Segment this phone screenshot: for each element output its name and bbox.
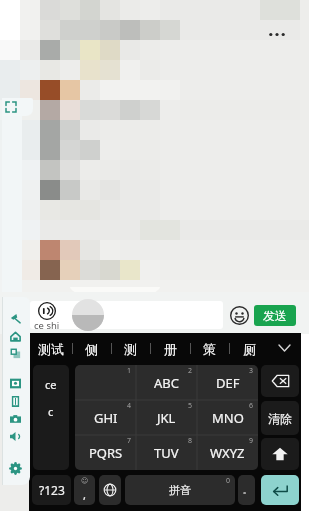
staticText: DEF [216,374,240,392]
staticText: 发送 [263,308,287,323]
staticText: 2 [188,366,193,376]
staticText: c [48,404,54,419]
button[interactable]: ce [33,365,69,470]
button[interactable]: Fullscreen [2,98,33,116]
button[interactable]: Card [6,392,25,410]
staticText: 册 [164,341,177,357]
button[interactable]: 测 [111,336,149,361]
button[interactable]: Camera [6,410,25,428]
button[interactable]: 拼音 [125,475,235,505]
staticText: 1 [127,366,132,376]
button[interactable]: ?123 [32,475,71,505]
button[interactable]: 策 [190,336,228,361]
staticText: 测试 [38,341,64,357]
button[interactable]: 清除 [261,401,299,435]
button[interactable] [30,301,223,329]
button[interactable]: Pin [6,309,25,327]
button[interactable]: JKL [136,400,197,435]
staticText: 7 [127,436,132,446]
staticText: 。 [243,485,251,495]
button[interactable]: 厕 [230,336,268,361]
staticText: WXYZ [210,444,245,462]
staticText: JKL [157,409,176,427]
button[interactable]: Photos [6,374,25,392]
staticText: 5 [188,401,193,411]
staticText: 测 [124,341,137,357]
staticText: ABC [154,374,179,392]
staticText: ce [45,377,57,392]
staticText: 厕 [243,341,256,357]
button[interactable]: 册 [151,336,189,361]
staticText: 策 [203,341,216,357]
button[interactable]: MNO [197,400,258,435]
button[interactable]: More options [264,27,290,41]
staticText: GHI [94,409,118,427]
staticText: ☺ [81,477,89,485]
button[interactable]: GHI [75,400,136,435]
button[interactable]: Duplicate [6,344,25,362]
staticText: TUV [154,444,179,462]
button[interactable]: Settings [6,459,25,477]
staticText: 侧 [85,341,98,357]
button[interactable]: 。 [238,475,255,505]
staticText: 4 [127,401,132,411]
button[interactable]: Language [99,475,121,505]
staticText: 6 [249,401,254,411]
button[interactable]: Backspace [261,365,299,397]
staticText: 8 [188,436,193,446]
button[interactable]: Hide keyboard [273,336,295,360]
button[interactable] [33,302,61,330]
staticText: 拼音 [169,483,191,497]
button[interactable]: ABC [136,365,197,400]
button[interactable]: PQRS [75,435,136,470]
button[interactable]: Enter [261,475,299,505]
staticText: 9 [249,436,254,446]
button[interactable]: 1 [75,365,136,400]
staticText: PQRS [89,444,123,462]
button[interactable]: Volume [6,427,25,445]
button[interactable]: ☺ [74,475,95,505]
button[interactable]: Home [6,327,25,345]
staticText: ?123 [39,482,65,498]
staticText: 0 [226,476,231,486]
staticText: , [83,487,86,502]
staticText: 清除 [268,411,292,426]
button[interactable]: 发送 [254,305,296,326]
button[interactable]: Shift [261,438,299,470]
button[interactable]: WXYZ [197,435,258,470]
button[interactable]: TUV [136,435,197,470]
staticText: ce shi [34,319,60,332]
button[interactable]: DEF [197,365,258,400]
button[interactable]: 侧 [72,336,110,361]
staticText: 3 [249,366,254,376]
button[interactable]: Emoji [228,304,250,326]
button[interactable]: 测试 [32,336,70,361]
staticText: MNO [212,409,244,427]
